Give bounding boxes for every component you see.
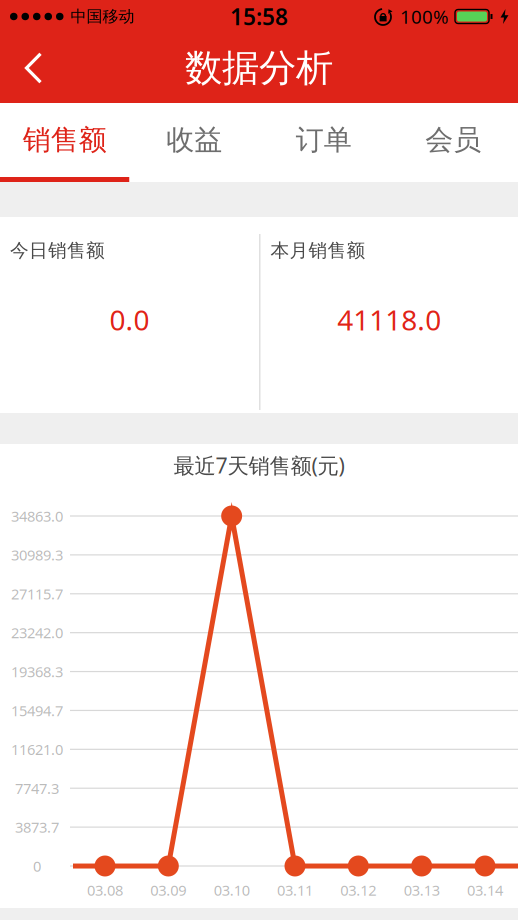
staticText: 数据分析 [185, 45, 333, 91]
staticText: 03.11 [277, 880, 313, 900]
staticText: 本月销售额 [270, 239, 365, 262]
button[interactable]: 返回 [0, 33, 43, 103]
staticText: 100% [400, 4, 449, 29]
button[interactable]: 会员 [388, 103, 518, 182]
button[interactable]: 销售额 [0, 103, 129, 182]
staticText: 中国移动 [70, 7, 134, 26]
staticText: 23242.0 [11, 623, 63, 642]
staticText: 27115.7 [11, 584, 63, 603]
staticText: 15:58 [230, 1, 288, 31]
staticText: 11621.0 [11, 740, 63, 759]
staticText: 03.08 [87, 880, 123, 900]
staticText: 15494.7 [11, 701, 63, 720]
staticText: 订单 [296, 123, 352, 157]
staticText: 会员 [425, 123, 481, 157]
button[interactable]: 收益 [129, 103, 259, 182]
button[interactable]: 订单 [259, 103, 388, 182]
staticText: 最近7天销售额(元) [173, 451, 344, 479]
staticText: 03.10 [214, 880, 250, 900]
staticText: 0 [33, 856, 41, 876]
staticText: 3873.7 [15, 817, 59, 837]
staticText: 销售额 [23, 123, 107, 157]
staticText: 19368.3 [11, 662, 63, 681]
staticText: 30989.3 [11, 545, 63, 565]
staticText: 34863.0 [11, 506, 63, 526]
staticText: 收益 [166, 123, 222, 157]
staticText: 0.0 [109, 301, 149, 338]
staticText: 03.12 [340, 880, 376, 900]
staticText: 41118.0 [337, 301, 441, 338]
staticText: 03.14 [467, 880, 503, 900]
staticText: 7747.3 [15, 778, 59, 798]
staticText: 03.13 [404, 880, 440, 900]
staticText: 03.09 [150, 880, 186, 900]
staticText: 今日销售额 [10, 239, 105, 262]
